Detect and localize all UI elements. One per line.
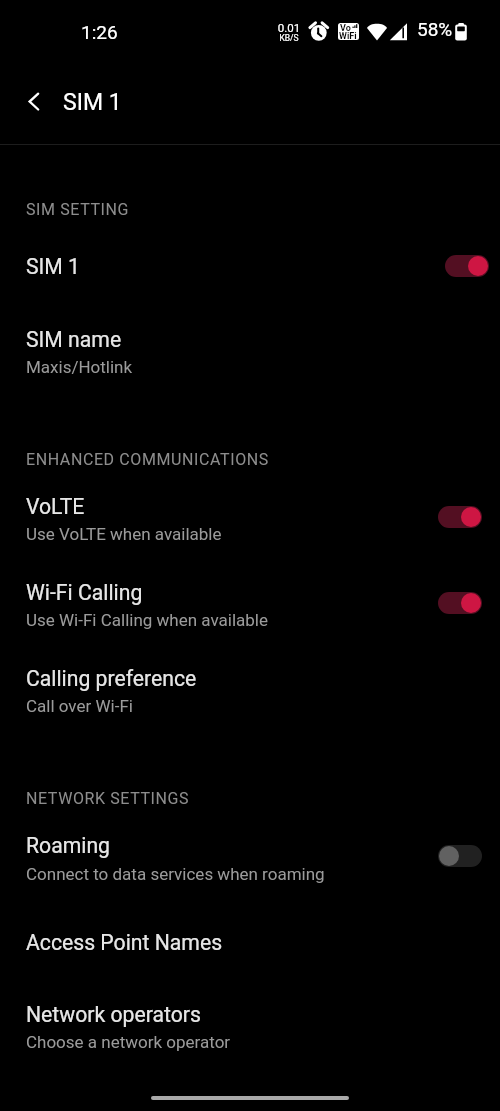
button[interactable]: Roaming [0, 827, 500, 889]
staticText: KB/S [277, 33, 301, 43]
staticText: NETWORK SETTINGS [26, 789, 190, 808]
staticText: VoLTE [26, 494, 85, 519]
button[interactable]: Wi-Fi Calling enabled [425, 579, 495, 627]
staticText: SIM SETTING [26, 200, 130, 219]
button[interactable]: Network operators [0, 996, 500, 1058]
staticText: SIM name [26, 327, 122, 352]
staticText: Network operators [26, 1002, 201, 1027]
staticText: Wi-Fi Calling [26, 580, 143, 605]
staticText: SIM 1 [26, 254, 81, 279]
staticText: Use Wi-Fi Calling when available [26, 610, 269, 630]
staticText: Use VoLTE when available [26, 524, 222, 544]
staticText: 1:26 [81, 21, 118, 43]
staticText: 0.01 [277, 21, 301, 34]
staticText: SIM 1 [63, 89, 122, 116]
staticText: 58% [417, 18, 453, 40]
button[interactable]: VoLTE [0, 488, 500, 550]
button[interactable]: Roaming disabled [425, 832, 495, 880]
button[interactable]: Wi-Fi Calling [0, 574, 500, 636]
staticText: Access Point Names [26, 930, 223, 955]
staticText: Maxis/Hotlink [26, 357, 133, 377]
button[interactable]: SIM 1 [0, 243, 500, 291]
staticText: Calling preference [26, 666, 197, 691]
staticText: Choose a network operator [26, 1032, 231, 1052]
staticText: Call over Wi-Fi [26, 696, 133, 716]
staticText: Connect to data services when roaming [26, 864, 325, 884]
staticText: Vo [340, 23, 351, 34]
staticText: WiFi [339, 31, 357, 40]
button[interactable]: Back [10, 78, 58, 126]
button[interactable]: SIM 1 [58, 82, 148, 122]
button[interactable]: VoLTE enabled [425, 493, 495, 541]
staticText: ENHANCED COMMUNICATIONS [26, 450, 269, 469]
button[interactable]: Calling preference [0, 660, 500, 722]
button[interactable]: Access Point Names [0, 920, 500, 968]
button[interactable]: SIM 1 enabled [432, 242, 500, 290]
button[interactable]: SIM name [0, 318, 500, 386]
staticText: Roaming [26, 833, 110, 858]
